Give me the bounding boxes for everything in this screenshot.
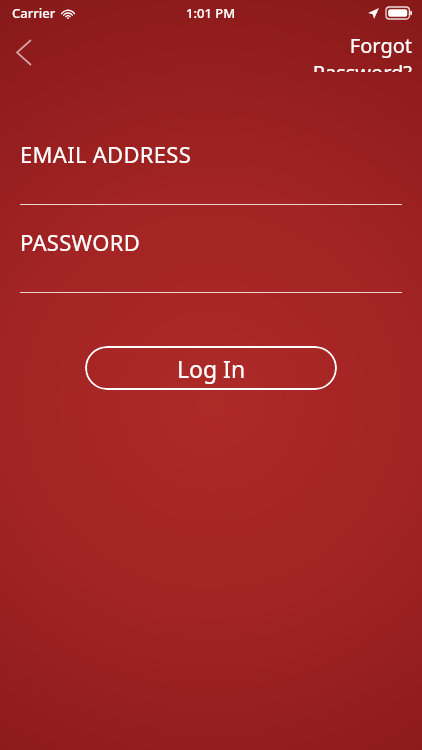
button[interactable]: PASSWORD: [20, 227, 422, 253]
staticText: Forgot Password?: [246, 32, 412, 72]
staticText: PASSWORD: [20, 227, 140, 253]
button[interactable]: Forgot Password?: [246, 32, 412, 72]
staticText: Log In: [177, 353, 246, 384]
button[interactable]: Back: [0, 28, 52, 78]
staticText: Carrier: [12, 4, 56, 22]
button[interactable]: Log In: [85, 346, 337, 390]
staticText: EMAIL ADDRESS: [20, 139, 192, 165]
staticText: 1:01 PM: [186, 4, 236, 22]
button[interactable]: EMAIL ADDRESS: [20, 139, 422, 165]
